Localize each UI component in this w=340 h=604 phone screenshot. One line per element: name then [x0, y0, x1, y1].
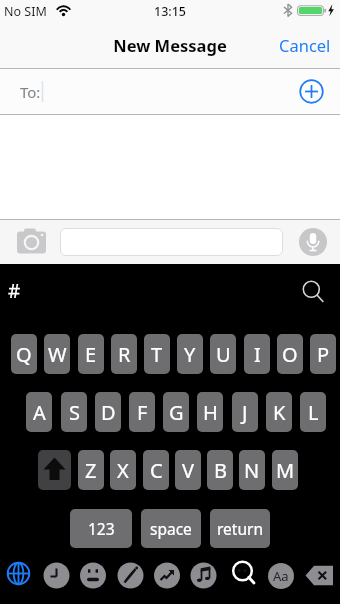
staticText: 123 — [88, 518, 115, 539]
staticText: I — [254, 341, 261, 368]
staticText: To: — [20, 82, 41, 102]
button[interactable]: U — [210, 334, 236, 374]
button[interactable]: M — [272, 450, 298, 490]
button[interactable]: K — [266, 392, 292, 432]
button[interactable] — [299, 79, 324, 104]
button[interactable]: L — [300, 392, 326, 432]
button[interactable]: return — [210, 509, 270, 548]
staticText: S — [69, 399, 80, 426]
button[interactable]: R — [111, 334, 137, 374]
button[interactable]: X — [110, 450, 136, 490]
staticText: J — [242, 399, 248, 426]
staticText: F — [137, 399, 148, 426]
button[interactable]: J — [232, 392, 258, 432]
staticText: R — [118, 341, 131, 368]
staticText: Q — [16, 341, 32, 368]
staticText: H — [203, 399, 218, 426]
button[interactable]: D — [95, 392, 121, 432]
staticText: D — [101, 399, 116, 426]
staticText: M — [276, 457, 295, 484]
button[interactable]: C — [143, 450, 169, 490]
staticText: V — [182, 457, 194, 484]
button[interactable]: Y — [177, 334, 203, 374]
button[interactable]: W — [44, 334, 70, 374]
staticText: 13:15 — [0, 3, 340, 20]
button[interactable] — [38, 450, 71, 490]
button[interactable]: H — [197, 392, 223, 432]
button[interactable]: 123 — [70, 509, 132, 548]
staticText: G — [169, 399, 184, 426]
staticText: A — [33, 399, 46, 426]
staticText: O — [282, 341, 298, 368]
button[interactable]: E — [78, 334, 104, 374]
staticText: Y — [184, 341, 196, 368]
button[interactable]: O — [277, 334, 303, 374]
staticText: return — [217, 518, 263, 539]
staticText: New Message — [0, 34, 340, 56]
button[interactable]: G — [163, 392, 189, 432]
staticText: X — [117, 457, 129, 484]
button[interactable]: To: — [0, 69, 340, 114]
staticText: Z — [85, 457, 97, 484]
staticText: No SIM — [4, 3, 47, 20]
staticText: Cancel — [279, 34, 331, 56]
button[interactable]: N — [239, 450, 265, 490]
button[interactable] — [60, 228, 283, 256]
staticText: P — [317, 341, 330, 368]
staticText: T — [151, 341, 163, 368]
button[interactable]: Q — [11, 334, 37, 374]
button[interactable] — [17, 228, 49, 256]
staticText: L — [308, 399, 319, 426]
staticText: U — [216, 341, 231, 368]
button[interactable]: Cancel — [279, 34, 331, 56]
button[interactable]: space — [141, 509, 201, 548]
staticText: B — [214, 457, 227, 484]
button[interactable]: A — [26, 392, 52, 432]
staticText: # — [8, 278, 21, 304]
button[interactable]: P — [310, 334, 336, 374]
button[interactable]: Aa — [268, 563, 294, 589]
staticText: W — [48, 341, 67, 368]
staticText: K — [273, 399, 286, 426]
staticText: N — [244, 457, 260, 484]
button[interactable]: S — [61, 392, 87, 432]
staticText: Aa — [273, 567, 289, 585]
button[interactable]: B — [207, 450, 233, 490]
button[interactable]: F — [129, 392, 155, 432]
staticText: space — [150, 518, 192, 539]
button[interactable] — [299, 228, 327, 256]
button[interactable]: I — [244, 334, 270, 374]
staticText: E — [85, 341, 97, 368]
button[interactable]: T — [144, 334, 170, 374]
button[interactable]: Z — [78, 450, 104, 490]
staticText: C — [150, 457, 163, 484]
button[interactable]: V — [175, 450, 201, 490]
